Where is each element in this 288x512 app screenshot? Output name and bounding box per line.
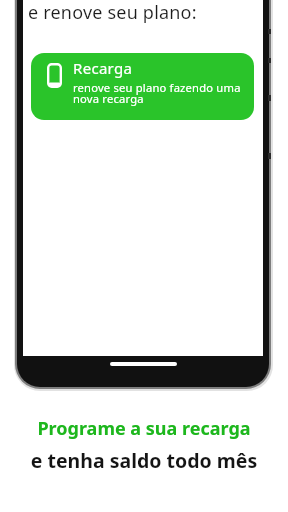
- staticText: renove seu plano fazendo uma nova recarg…: [73, 80, 241, 106]
- staticText: e tenha saldo todo mês: [0, 447, 288, 474]
- staticText: e renove seu plano:: [28, 0, 197, 25]
- button[interactable]: Recarga: [31, 53, 254, 120]
- staticText: Programe a sua recarga: [0, 416, 288, 441]
- staticText: Recarga: [73, 58, 133, 78]
